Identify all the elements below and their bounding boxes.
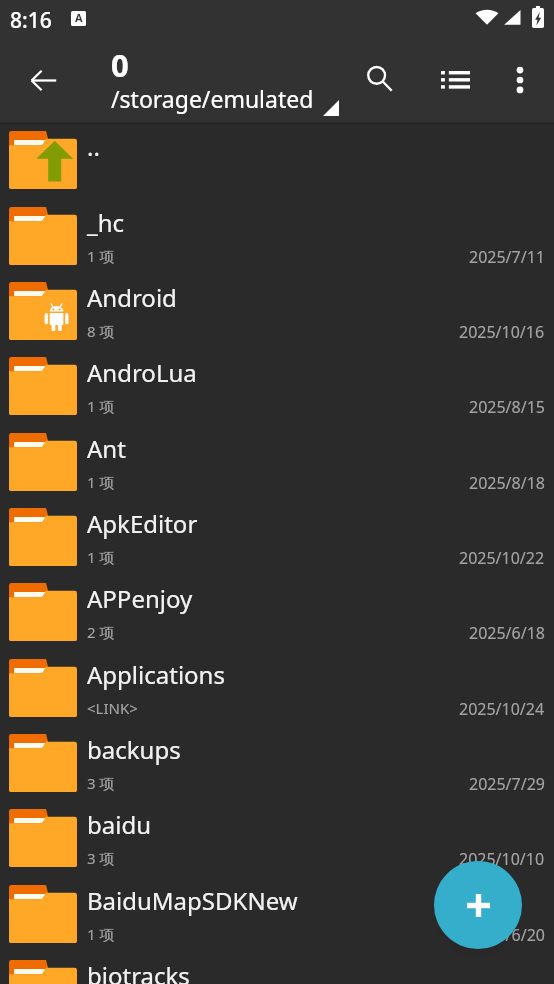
staticText: 2025/10/22 <box>459 547 545 569</box>
button[interactable]: Back <box>15 52 71 108</box>
staticText: BaiduMapSDKNew <box>87 884 447 917</box>
staticText: 2025/10/16 <box>459 321 545 343</box>
staticText: 3 项 <box>87 848 115 868</box>
button[interactable]: .. <box>0 122 554 197</box>
staticText: APPenjoy <box>87 582 447 615</box>
staticText: 1 项 <box>87 472 115 492</box>
staticText: 2025/8/15 <box>469 396 545 418</box>
staticText: Android <box>87 281 447 314</box>
button[interactable]: baidu <box>0 800 554 875</box>
staticText: A <box>75 10 83 25</box>
staticText: 1 项 <box>87 246 115 266</box>
staticText: backups <box>87 733 447 766</box>
staticText: 2025/8/18 <box>469 472 545 494</box>
staticText: /storage/emulated <box>111 83 326 114</box>
staticText: 2025/6/20 <box>469 924 545 946</box>
staticText: 1 项 <box>87 547 115 567</box>
staticText: biotracks <box>87 959 447 984</box>
button[interactable]: Android <box>0 273 554 348</box>
staticText: 3 项 <box>87 773 115 793</box>
staticText: 0 <box>111 44 129 86</box>
button[interactable]: _hc <box>0 198 554 273</box>
staticText: 2025/7/29 <box>469 773 545 795</box>
staticText: 2025/10/10 <box>459 848 545 870</box>
staticText: 2025/7/11 <box>469 246 545 268</box>
button[interactable]: AndroLua <box>0 348 554 423</box>
staticText: 1 项 <box>87 924 115 944</box>
staticText: 2025/10/24 <box>459 698 545 720</box>
button[interactable]: ApkEditor <box>0 499 554 574</box>
staticText: 1 项 <box>87 396 115 416</box>
staticText: AndroLua <box>87 356 447 389</box>
button[interactable]: Applications <box>0 650 554 725</box>
button[interactable]: APPenjoy <box>0 574 554 649</box>
staticText: 2025/6/18 <box>469 622 545 644</box>
staticText: 8 项 <box>87 321 115 341</box>
staticText: 2 项 <box>87 622 115 642</box>
staticText: _hc <box>87 206 447 239</box>
button[interactable]: backups <box>0 725 554 800</box>
button[interactable]: biotracks <box>0 951 554 984</box>
staticText: ApkEditor <box>87 507 447 540</box>
staticText: Ant <box>87 432 447 465</box>
staticText: .. <box>87 130 447 163</box>
staticText: <LINK> <box>87 698 138 718</box>
button[interactable]: Search <box>352 51 408 107</box>
button[interactable]: Add <box>434 861 522 949</box>
staticText: baidu <box>87 808 447 841</box>
button[interactable]: BaiduMapSDKNew <box>0 876 554 951</box>
staticText: Applications <box>87 658 447 691</box>
staticText: 8:16 <box>10 6 52 35</box>
button[interactable]: Ant <box>0 424 554 499</box>
button[interactable]: More options <box>492 52 548 108</box>
button[interactable]: View mode <box>427 52 483 108</box>
